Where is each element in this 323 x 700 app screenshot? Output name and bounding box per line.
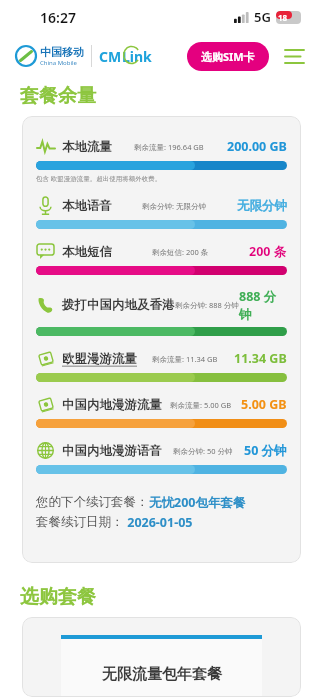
button[interactable]: 中国内地漫游流量 [36,395,287,428]
staticText: China Mobile [40,59,77,67]
staticText: 888 分钟 [239,288,287,322]
staticText: 18 [278,12,288,23]
staticText: 200 条 [249,243,287,260]
staticText: 欧盟漫游流量 [62,351,137,367]
button[interactable]: 无限流量包年套餐 [61,635,262,697]
staticText: 剩余分钟: 无限分钟 [142,201,206,211]
staticText: 剩余分钟: 50 分钟 [173,446,233,456]
staticText: 剩余流量: 5.00 GB [170,400,232,410]
staticText: 5G [254,8,271,26]
button[interactable]: 本地语音 [36,196,287,229]
staticText: 套餐余量 [20,84,96,108]
staticText: 中国内地漫游流量 [62,397,162,413]
staticText: 剩余流量: 196.64 GB [134,142,204,152]
staticText: 无限分钟 [237,198,287,214]
button[interactable]: 本地流量 [36,137,287,183]
staticText: 16:27 [40,8,76,27]
button[interactable]: 拨打中国内地及香港 [36,288,287,336]
staticText: 2026-01-05 [124,514,193,531]
staticText: 拨打中国内地及香港 [62,297,175,313]
button[interactable]: Menu [281,43,307,69]
button[interactable]: 欧盟漫游流量 [36,349,287,382]
button[interactable]: 选购SIM卡 [187,42,269,71]
button[interactable]: 本地短信 [36,242,287,275]
staticText: 套餐续订日期： [36,514,124,530]
staticText: 无忧200包年套餐 [149,494,246,511]
staticText: 中国内地漫游语音 [62,443,162,459]
staticText: 本地短信 [62,244,112,260]
staticText: 5.00 GB [241,396,287,413]
staticText: 50 分钟 [244,442,287,459]
staticText: 您的下个续订套餐： [36,494,149,510]
staticText: 剩余短信: 200 条 [152,247,209,257]
staticText: 剩余流量: 11.34 GB [152,354,218,364]
staticText: Link [122,47,152,66]
staticText: 200.00 GB [227,138,287,155]
staticText: 剩余分钟: 888 分钟 [175,300,239,310]
button[interactable]: 中国内地漫游语音 [36,441,287,474]
staticText: 本地流量 [62,139,112,155]
staticText: 无限流量包年套餐 [102,665,222,684]
staticText: 选购SIM卡 [201,49,255,64]
staticText: CM [99,47,122,66]
staticText: 选购套餐 [20,585,96,609]
staticText: 包含 欧盟漫游流量。超出使用将额外收费。 [36,174,162,183]
staticText: 11.34 GB [234,350,287,367]
staticText: 中国移动 [40,45,84,59]
staticText: 本地语音 [62,198,112,214]
